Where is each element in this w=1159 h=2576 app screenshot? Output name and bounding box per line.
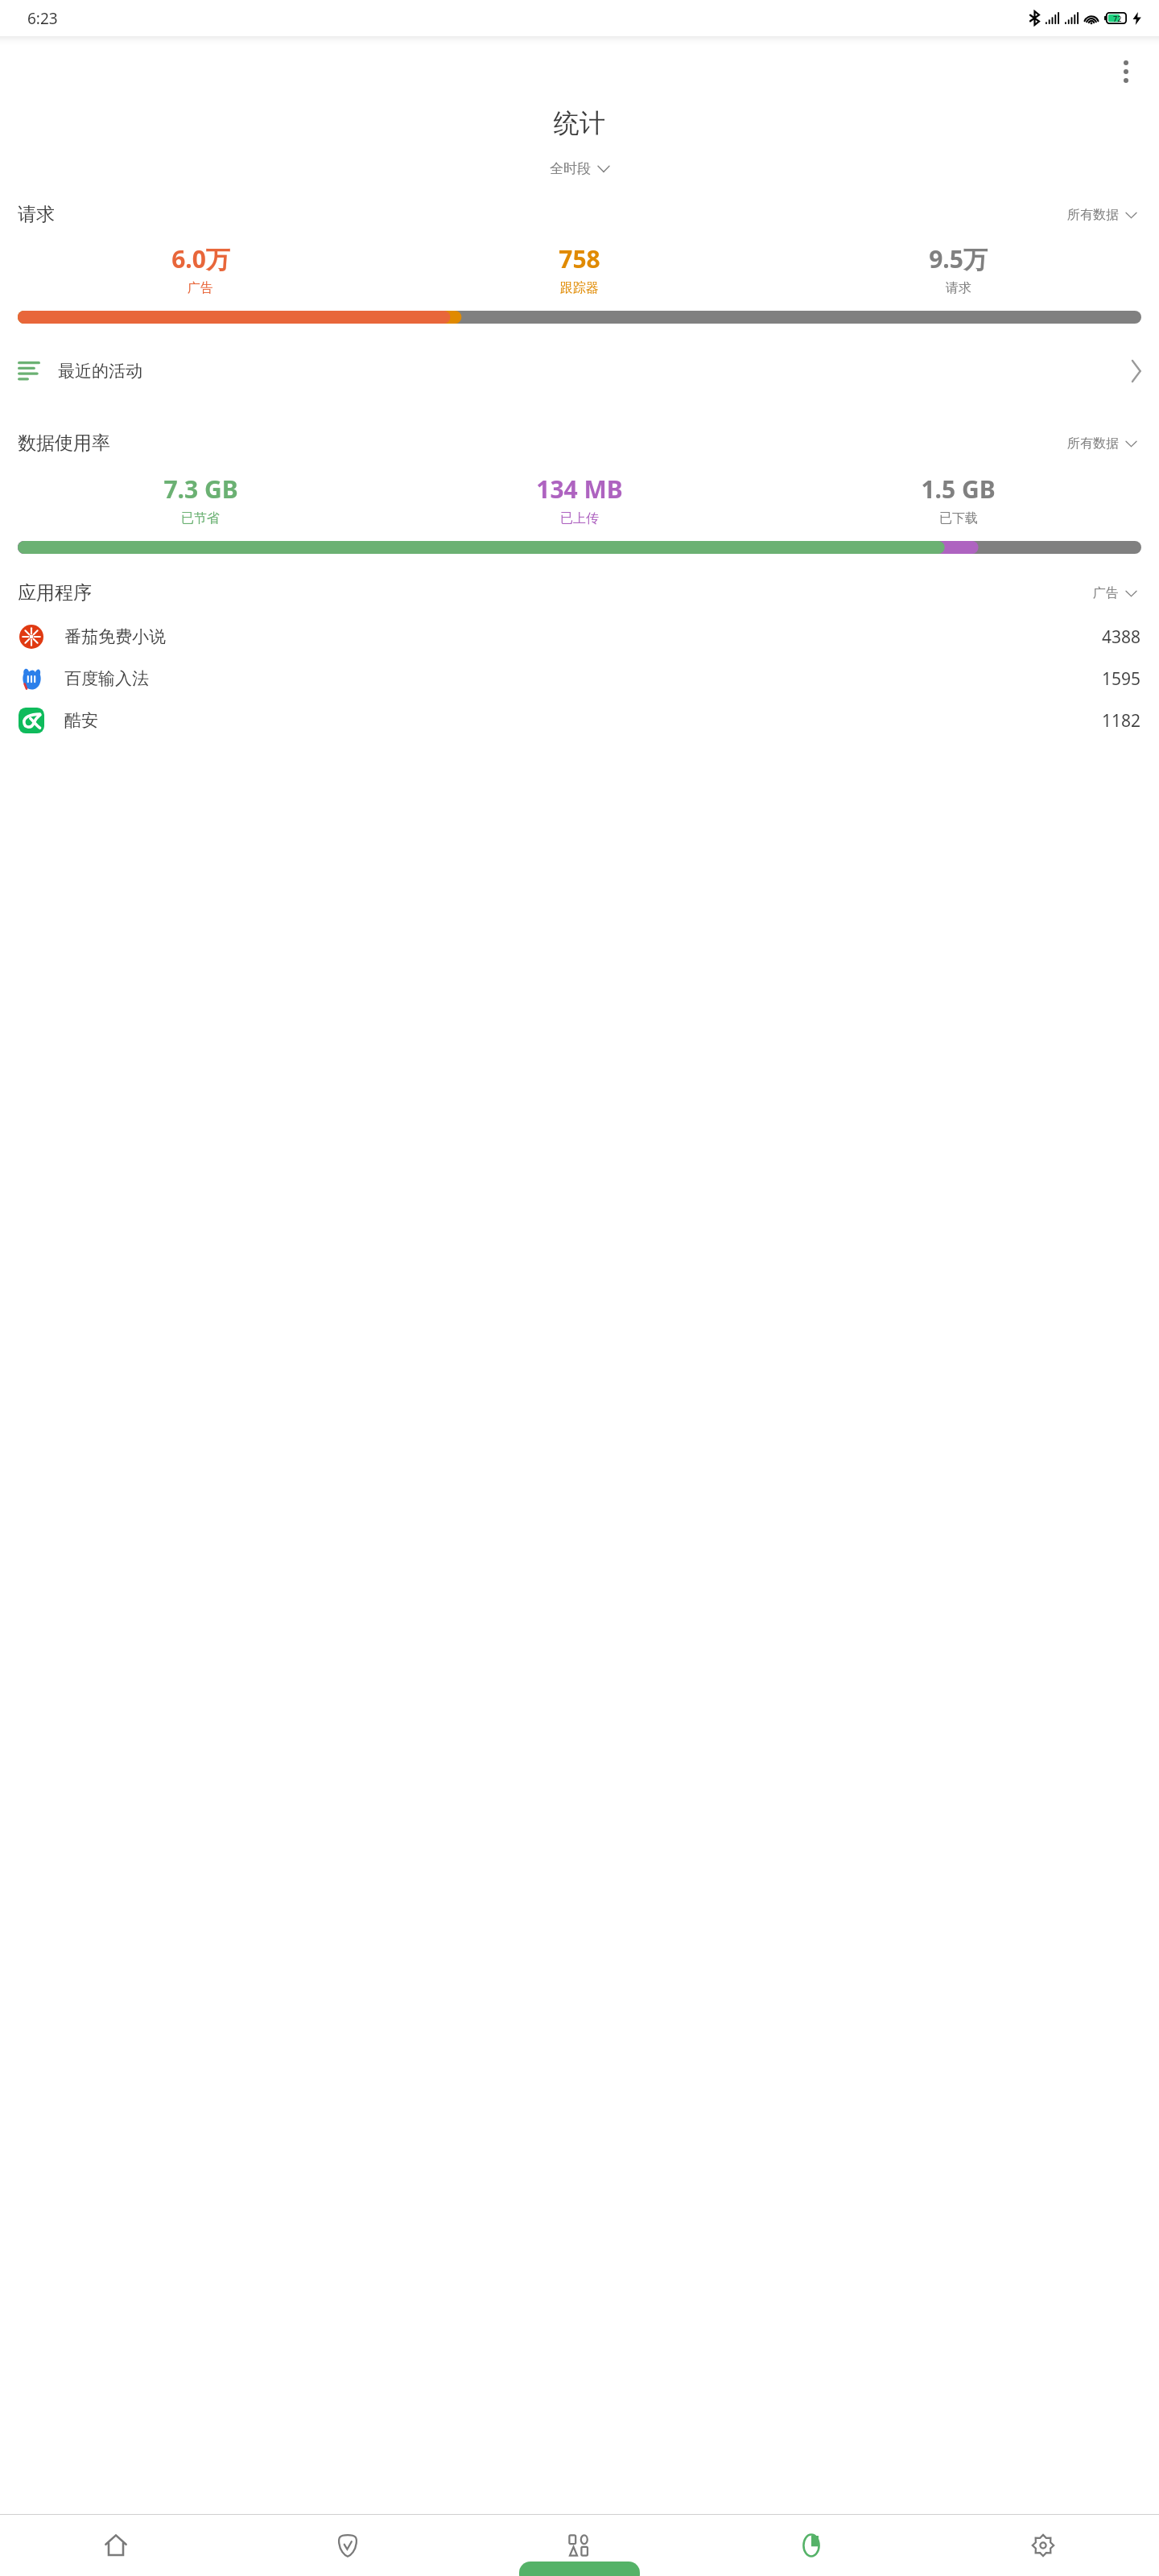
button[interactable]: 百度输入法 (0, 658, 1159, 700)
staticText: 百度输入法 (64, 668, 149, 689)
staticText: 已上传 (560, 510, 599, 526)
staticText: 已节省 (181, 510, 220, 526)
staticText: 72 (1113, 14, 1122, 23)
button[interactable]: 广告 (1088, 582, 1141, 605)
staticText: 6.0万 (171, 242, 230, 275)
button[interactable]: Statistics (695, 2515, 927, 2576)
button[interactable]: 最近的活动 (0, 348, 1159, 394)
staticText: 1182 (1102, 709, 1141, 733)
staticText: 全时段 (550, 160, 591, 177)
staticText: 统计 (554, 107, 605, 139)
button[interactable]: Settings (927, 2515, 1159, 2576)
button[interactable]: 7.3 GB (11, 473, 390, 526)
staticText: 758 (559, 242, 600, 275)
staticText: 请求 (946, 280, 971, 296)
button[interactable]: Home (0, 2515, 232, 2576)
staticText: 跟踪器 (560, 280, 599, 296)
staticText: 1.5 GB (921, 473, 996, 506)
button[interactable]: 酷安 (0, 700, 1159, 741)
staticText: 9.5万 (929, 242, 988, 275)
staticText: 7.3 GB (163, 473, 238, 506)
staticText: 4388 (1102, 625, 1141, 649)
staticText: 所有数据 (1067, 207, 1119, 223)
button[interactable]: 134 MB (390, 473, 769, 526)
staticText: 最近的活动 (58, 361, 142, 382)
button[interactable]: 所有数据 (1062, 204, 1141, 226)
staticText: 134 MB (536, 473, 623, 506)
staticText: 应用程序 (18, 581, 92, 605)
button[interactable]: More options (1107, 54, 1145, 89)
button[interactable]: Apps (464, 2515, 695, 2576)
staticText: 1595 (1102, 667, 1141, 691)
button[interactable]: 所有数据 (1062, 432, 1141, 455)
staticText: 6:23 (27, 8, 58, 29)
staticText: 请求 (18, 203, 55, 226)
button[interactable]: 1.5 GB (769, 473, 1148, 526)
staticText: 广告 (1093, 585, 1119, 601)
button[interactable]: 758 (390, 242, 769, 296)
staticText: 酷安 (64, 710, 98, 731)
staticText: 已下载 (939, 510, 978, 526)
button[interactable]: 全时段 (543, 157, 616, 180)
staticText: 所有数据 (1067, 436, 1119, 452)
button[interactable]: 9.5万 (769, 242, 1148, 296)
staticText: 数据使用率 (18, 431, 110, 455)
staticText: 广告 (188, 280, 213, 296)
button[interactable]: 6.0万 (11, 242, 390, 296)
button[interactable]: 番茄免费小说 (0, 616, 1159, 658)
staticText: 番茄免费小说 (64, 626, 166, 647)
button[interactable]: Action (519, 2562, 640, 2576)
button[interactable]: Protection (232, 2515, 464, 2576)
